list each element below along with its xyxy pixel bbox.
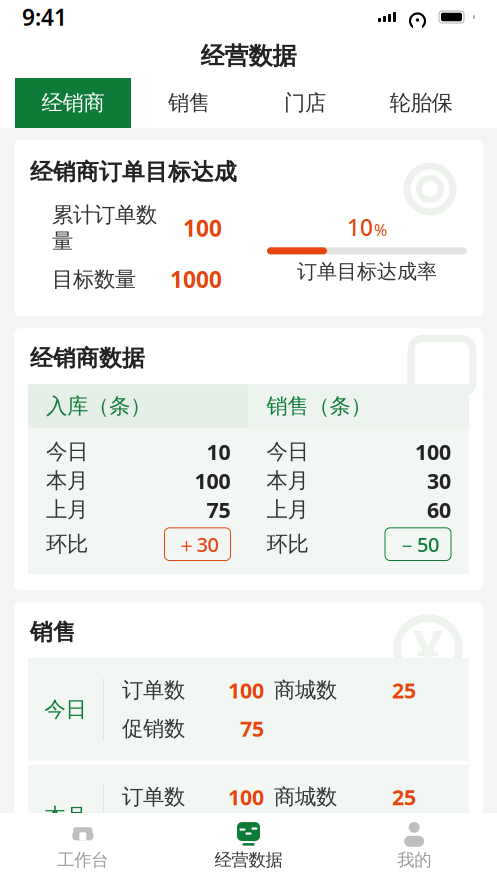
staticText: 今日 (44, 696, 86, 722)
staticText: 75 (206, 495, 230, 524)
staticText: 经营数据 (214, 849, 282, 871)
staticText: 10 (206, 437, 230, 466)
staticText: 今日 (266, 439, 308, 465)
button[interactable]: 经营数据 (166, 815, 331, 881)
staticText: 60 (427, 495, 451, 524)
staticText: 销售 (168, 90, 210, 116)
staticText: % (374, 219, 387, 240)
staticText: 今日 (46, 439, 88, 465)
staticText: 门店 (284, 90, 326, 116)
staticText: 销售（条） (266, 393, 371, 419)
staticText: 经销商数据 (30, 344, 145, 372)
staticText: 累计订单数量 (52, 202, 157, 254)
staticText: 本月 (46, 468, 88, 494)
staticText: 9:41 (22, 2, 67, 32)
button[interactable]: 轮胎保 (363, 78, 479, 128)
staticText: 1000 (170, 264, 222, 294)
staticText: 100 (183, 213, 222, 243)
staticText: ＋30 (176, 531, 218, 558)
staticText: 订单目标达成率 (297, 259, 437, 284)
button[interactable]: 我的 (331, 815, 497, 881)
button[interactable]: 门店 (247, 78, 363, 128)
staticText: 促销数 (122, 715, 185, 742)
staticText: 30 (427, 466, 451, 495)
staticText: 100 (228, 676, 264, 704)
staticText: 25 (392, 783, 416, 811)
staticText: 订单数 (122, 784, 185, 810)
staticText: ¥ (412, 614, 443, 685)
staticText: 上月 (266, 497, 308, 523)
staticText: 我的 (397, 849, 431, 871)
button[interactable]: 销售 (131, 78, 247, 128)
button[interactable]: 经销商 (15, 78, 131, 128)
staticText: 工作台 (57, 849, 108, 871)
staticText: 25 (392, 676, 416, 704)
staticText: 10 (347, 212, 373, 242)
staticText: 经营数据 (200, 41, 296, 71)
staticText: －50 (397, 531, 439, 558)
button[interactable]: 工作台 (0, 815, 166, 881)
staticText: 商城数 (274, 677, 337, 703)
staticText: 轮胎保 (389, 90, 452, 116)
staticText: 经销商订单目标达成 (30, 158, 237, 186)
staticText: 目标数量 (52, 266, 136, 292)
staticText: 100 (415, 437, 451, 466)
staticText: 75 (240, 714, 264, 743)
staticText: 销售 (30, 618, 76, 646)
staticText: 上月 (46, 497, 88, 523)
staticText: 经销商 (41, 90, 104, 116)
staticText: 100 (194, 466, 230, 495)
staticText: 本月 (266, 468, 308, 494)
staticText: 100 (228, 783, 264, 811)
staticText: 环比 (46, 531, 88, 557)
staticText: 本月 (44, 803, 86, 829)
staticText: 订单数 (122, 677, 185, 703)
staticText: 商城数 (274, 784, 337, 810)
staticText: 75 (240, 821, 264, 849)
staticText: 环比 (266, 531, 308, 557)
staticText: 入库（条） (46, 393, 151, 419)
